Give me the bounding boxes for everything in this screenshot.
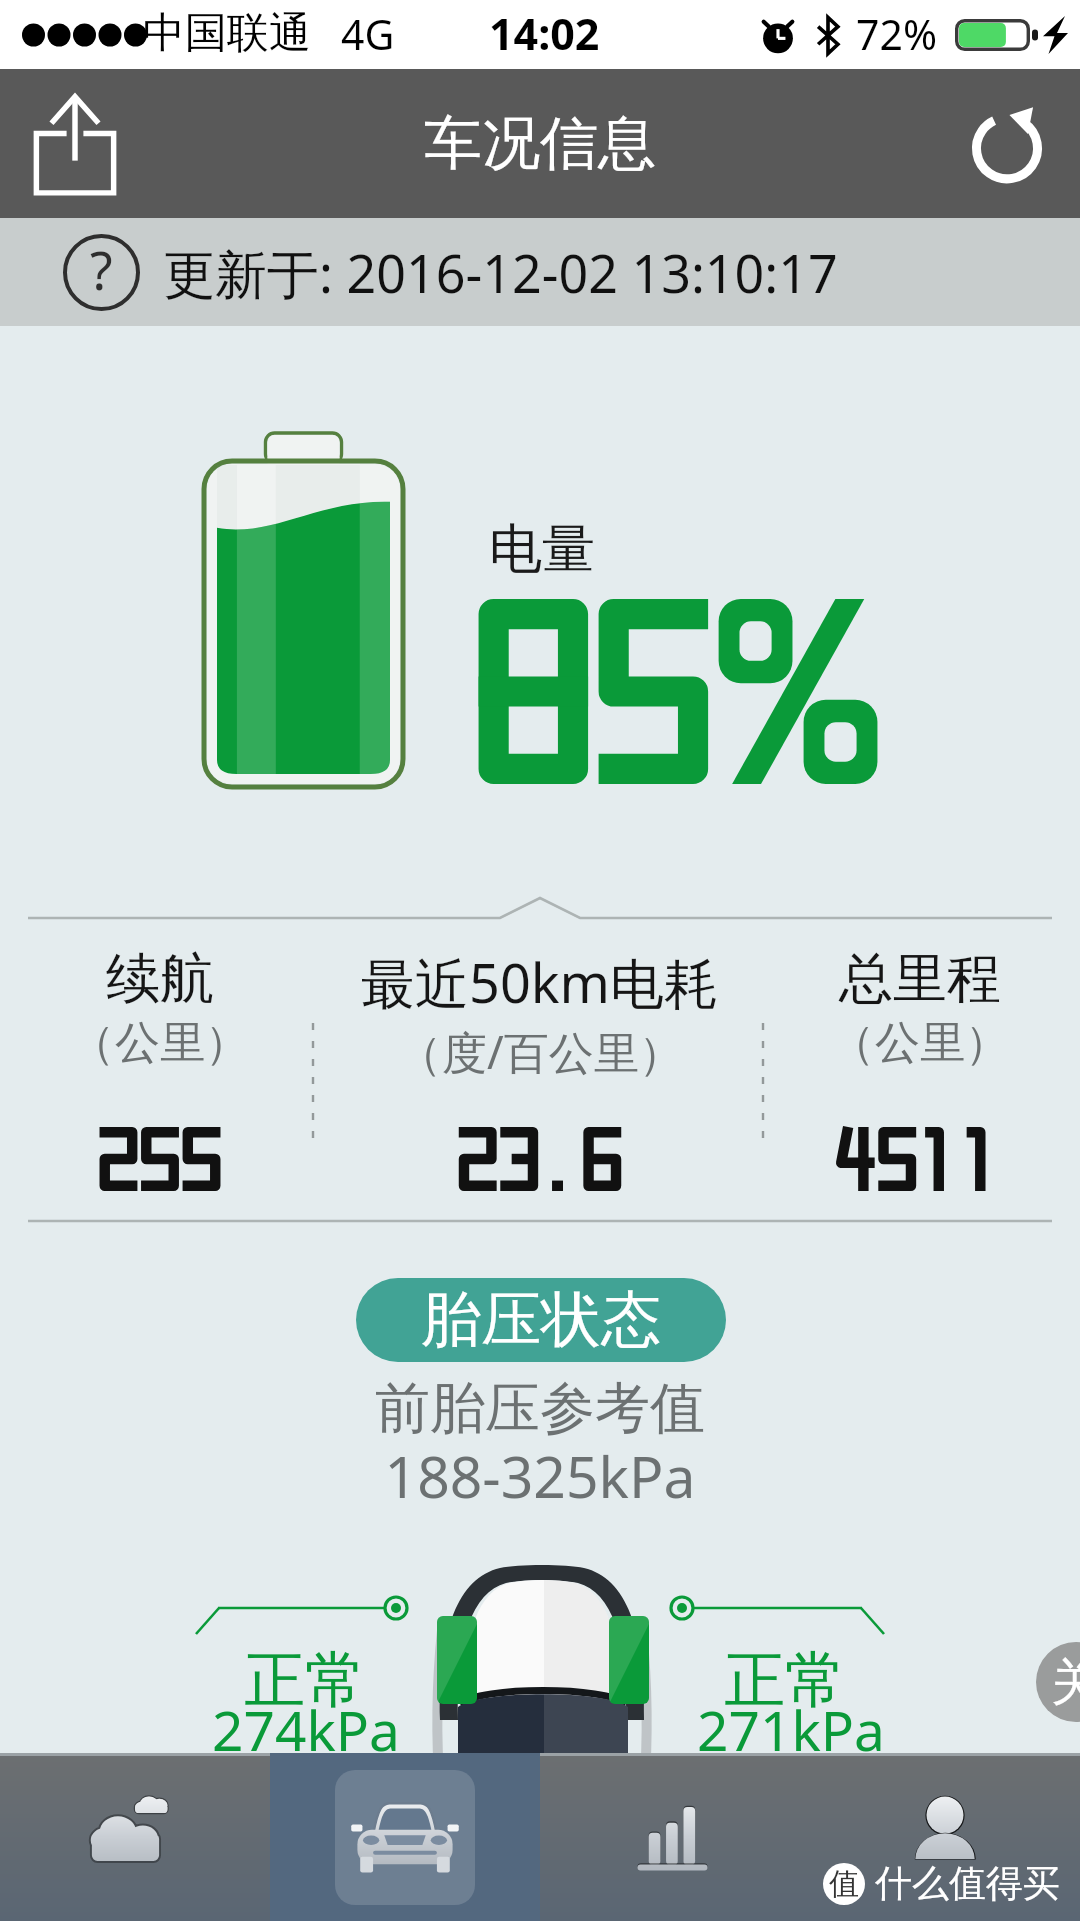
staticText: 4G xyxy=(341,6,395,62)
staticText: 中国联通 xyxy=(143,7,311,60)
staticText: 274kPa xyxy=(212,1692,400,1767)
button[interactable]: Help xyxy=(63,234,140,311)
staticText: 14:02 xyxy=(489,4,600,63)
staticText: （度/百公里） xyxy=(397,1021,684,1082)
staticText: ? xyxy=(90,234,113,305)
button[interactable]: Close xyxy=(1036,1642,1080,1722)
staticText: 正常 xyxy=(724,1642,846,1719)
staticText: 总里程 xyxy=(839,945,1001,1013)
button[interactable]: Share xyxy=(20,89,130,199)
button[interactable]: Weather xyxy=(0,1753,270,1921)
staticText: 更新于: 2016-12-02 13:10:17 xyxy=(163,237,838,308)
staticText: 前胎压参考值 xyxy=(0,1374,1080,1443)
staticText: 最近50km电耗 xyxy=(361,945,719,1019)
staticText: 188-325kPa xyxy=(0,1437,1080,1515)
staticText: 什么值得买 xyxy=(875,1860,1060,1907)
button[interactable]: Refresh xyxy=(952,89,1062,199)
staticText: 271kPa xyxy=(697,1692,885,1767)
staticText: 电量 xyxy=(489,516,595,583)
staticText: 续航 xyxy=(106,945,214,1013)
staticText: （公里） xyxy=(70,1015,250,1072)
staticText: 关 xyxy=(1051,1651,1080,1714)
staticText: （公里） xyxy=(830,1015,1010,1072)
staticText: 值 xyxy=(829,1865,859,1903)
button[interactable]: Car xyxy=(270,1753,540,1921)
button[interactable]: Stats xyxy=(540,1753,810,1921)
button[interactable]: Profile xyxy=(810,1753,1080,1921)
staticText: 车况信息 xyxy=(424,107,656,180)
staticText: 胎压状态 xyxy=(421,1282,661,1358)
staticText: 正常 xyxy=(244,1642,366,1719)
staticText: 72% xyxy=(856,6,937,62)
button[interactable]: 胎压状态 xyxy=(356,1278,726,1362)
